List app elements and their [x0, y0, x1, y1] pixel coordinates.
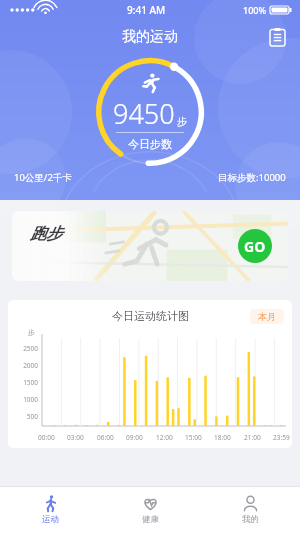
staticText: GO: [244, 237, 266, 256]
button[interactable]: 跑步: [12, 211, 288, 281]
staticText: 1000: [12, 395, 38, 404]
staticText: 21:00: [244, 433, 261, 442]
staticText: 2000: [12, 361, 38, 370]
staticText: 10公里/2千卡: [14, 171, 72, 184]
staticText: 1500: [12, 378, 38, 387]
button[interactable]: Records: [264, 24, 290, 50]
button[interactable]: 我的: [200, 487, 300, 533]
staticText: 9450: [113, 95, 175, 132]
staticText: 健康: [142, 514, 159, 525]
staticText: 跑步: [30, 224, 62, 244]
staticText: 15:00: [185, 433, 202, 442]
staticText: 本月: [258, 311, 276, 322]
button[interactable]: 健康: [100, 487, 200, 533]
staticText: 步: [177, 115, 187, 128]
staticText: 今日运动统计图: [112, 309, 189, 323]
button[interactable]: GO: [238, 229, 272, 263]
staticText: 我的: [242, 514, 259, 525]
staticText: 我的运动: [122, 28, 178, 46]
staticText: 2500: [12, 344, 38, 353]
staticText: 步: [28, 328, 35, 337]
button[interactable]: 运动: [0, 487, 100, 533]
staticText: 06:00: [97, 433, 114, 442]
staticText: 03:00: [67, 433, 84, 442]
staticText: 目标步数:10000: [218, 171, 286, 184]
button[interactable]: 本月: [258, 311, 276, 322]
staticText: 23:59: [273, 433, 290, 442]
staticText: 今日步数: [128, 137, 172, 151]
staticText: 12:00: [156, 433, 173, 442]
staticText: 运动: [42, 514, 59, 525]
staticText: 18:00: [214, 433, 231, 442]
staticText: 500: [12, 412, 38, 421]
staticText: 00:00: [38, 433, 55, 442]
staticText: 09:00: [126, 433, 143, 442]
staticText: 9:41 AM: [127, 3, 166, 17]
staticText: 100%: [243, 4, 267, 16]
